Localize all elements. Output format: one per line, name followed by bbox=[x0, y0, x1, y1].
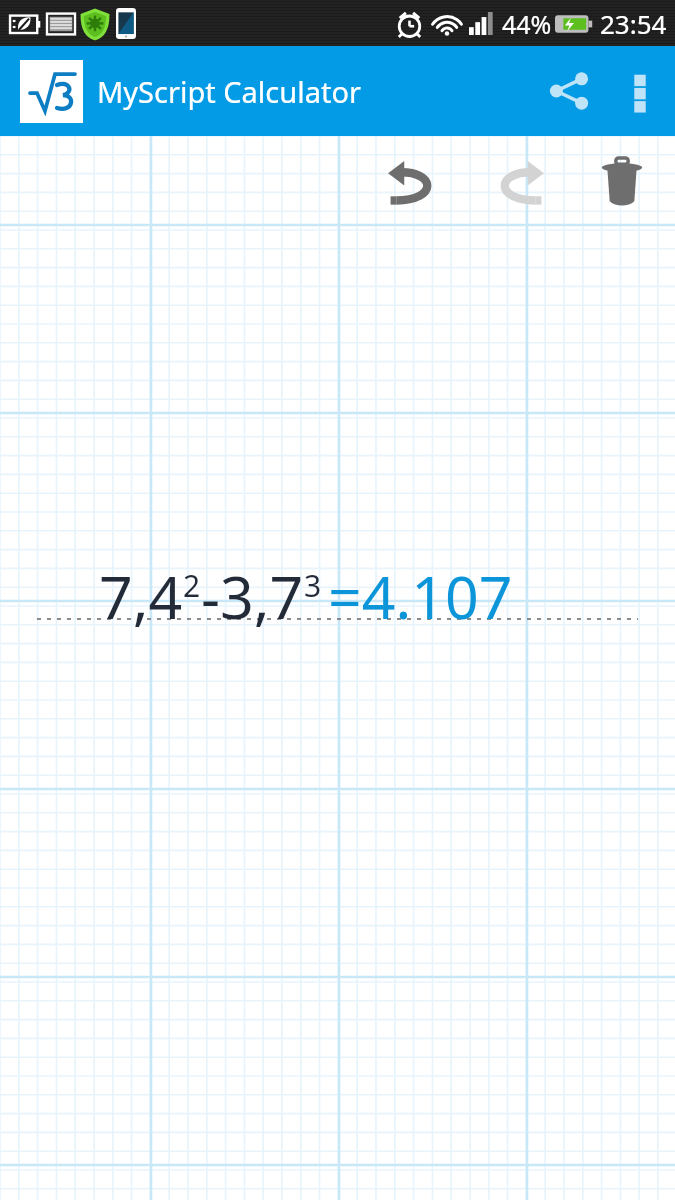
staticText: 2 bbox=[183, 565, 201, 606]
button[interactable]: Redo bbox=[476, 140, 560, 224]
staticText: MyScript Calculator bbox=[97, 72, 361, 111]
button[interactable]: Clear bbox=[580, 140, 664, 224]
staticText: 23:54 bbox=[600, 6, 667, 41]
staticText: 7,4 bbox=[99, 556, 183, 636]
staticText: 3 bbox=[304, 565, 322, 606]
button[interactable]: Undo bbox=[372, 140, 456, 224]
staticText: 44% bbox=[502, 7, 552, 41]
staticText: =4.107 bbox=[328, 556, 513, 636]
button[interactable] bbox=[20, 60, 83, 123]
button[interactable]: Share bbox=[533, 55, 605, 127]
staticText: -3,7 bbox=[201, 556, 304, 636]
button[interactable]: More options bbox=[605, 56, 675, 126]
